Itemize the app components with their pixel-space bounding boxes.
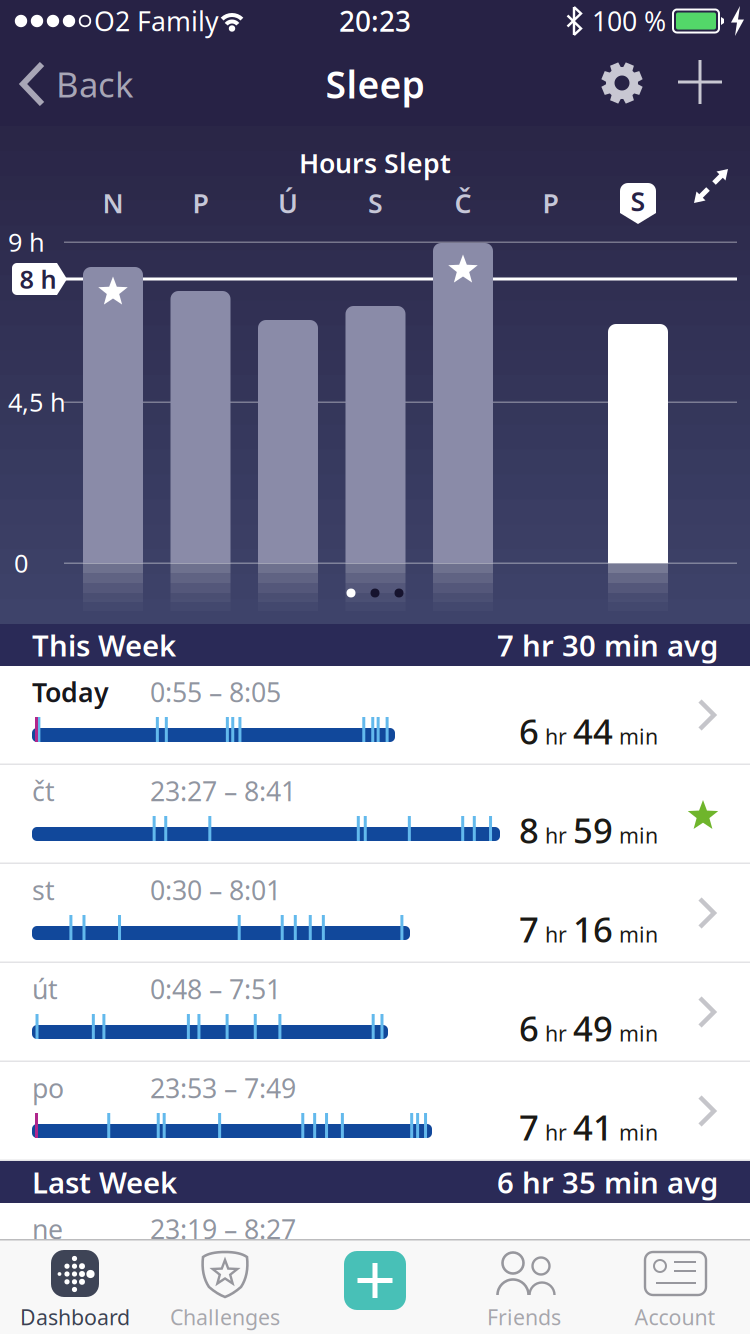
staticText: Č <box>454 185 471 221</box>
button[interactable]: Dashboard <box>0 0 150 94</box>
staticText: po <box>32 1070 64 1106</box>
staticText: 6 hr 44 min <box>519 708 658 754</box>
staticText: Ú <box>278 185 298 221</box>
staticText: út <box>32 971 58 1007</box>
button[interactable]: Friends <box>0 0 150 94</box>
staticText: čt <box>32 773 55 809</box>
staticText: Last Week <box>32 1162 177 1201</box>
staticText: Sleep <box>325 59 424 109</box>
staticText: Back <box>56 61 134 107</box>
staticText: 23:19 – 8:27 <box>150 1211 296 1247</box>
staticText: 8 h <box>19 262 56 296</box>
button[interactable]: út <box>0 0 750 99</box>
button[interactable]: st <box>0 0 750 99</box>
staticText: 23:53 – 7:49 <box>150 1070 296 1106</box>
staticText: P <box>542 185 558 221</box>
staticText: S <box>368 185 383 221</box>
staticText: 4,5 h <box>8 385 66 419</box>
staticText: 20:23 <box>339 2 411 40</box>
staticText: 6 hr 49 min <box>519 1005 658 1051</box>
staticText: 0:48 – 7:51 <box>150 971 281 1007</box>
staticText: This Week <box>32 625 176 664</box>
staticText: 7 hr 41 min <box>519 1104 658 1150</box>
staticText: Account <box>634 1303 715 1331</box>
staticText: Hours Slept <box>299 145 451 181</box>
button[interactable]: po <box>0 0 750 99</box>
button[interactable]: Expand chart <box>0 0 82 82</box>
staticText: 0 <box>14 546 28 580</box>
staticText: 6 hr 35 min avg <box>497 1162 718 1201</box>
staticText: 7 hr 16 min <box>519 906 658 952</box>
staticText: Friends <box>487 1303 561 1331</box>
staticText: N <box>102 185 123 221</box>
button[interactable]: Add <box>0 0 64 44</box>
button[interactable]: Settings <box>0 0 64 64</box>
staticText: 100 % <box>592 3 666 39</box>
staticText: Challenges <box>170 1303 280 1331</box>
button[interactable]: Back <box>0 0 160 84</box>
staticText: Today <box>32 674 109 710</box>
staticText: st <box>32 872 55 908</box>
staticText: 23:27 – 8:41 <box>150 773 296 809</box>
button[interactable]: Challenges <box>0 0 150 94</box>
button[interactable]: Log <box>0 0 150 94</box>
staticText: S <box>630 183 645 219</box>
button[interactable]: Account <box>0 0 151 94</box>
staticText: 7 hr 30 min avg <box>497 625 718 664</box>
staticText: 0:30 – 8:01 <box>150 872 281 908</box>
staticText: 0:55 – 8:05 <box>150 674 281 710</box>
staticText: ne <box>32 1211 63 1247</box>
staticText: O2 Family <box>94 3 219 39</box>
staticText: 9 h <box>8 225 45 259</box>
button[interactable]: čt <box>0 0 750 99</box>
staticText: Dashboard <box>20 1303 130 1331</box>
staticText: 8 hr 59 min <box>519 807 658 853</box>
staticText: P <box>192 185 208 221</box>
button[interactable]: Today <box>0 0 750 99</box>
